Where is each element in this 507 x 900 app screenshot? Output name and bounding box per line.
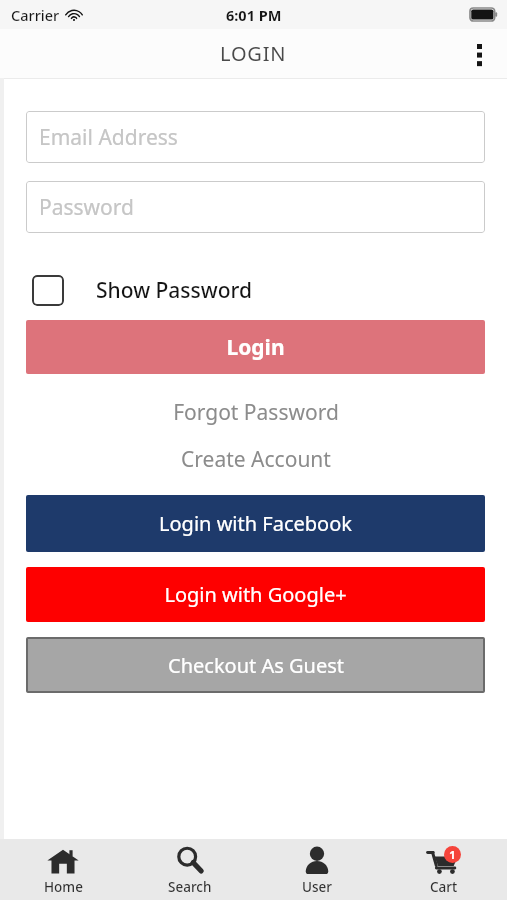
button[interactable]: Forgot Password [4, 397, 507, 427]
button[interactable]: 1 [380, 839, 507, 900]
button[interactable]: Login [26, 320, 485, 374]
button[interactable]: Create Account [4, 444, 507, 474]
staticText: Home [44, 878, 83, 896]
staticText: 6:01 PM [226, 5, 282, 25]
staticText: Login with Google+ [164, 581, 347, 608]
staticText: User [302, 878, 332, 896]
button[interactable]: User [253, 839, 380, 900]
staticText: Email Address [39, 123, 178, 152]
staticText: Carrier [11, 5, 60, 25]
button[interactable]: Login with Google+ [26, 567, 485, 622]
button[interactable]: Checkout As Guest [26, 637, 485, 693]
staticText: LOGIN [220, 40, 287, 67]
button[interactable]: Login with Facebook [26, 495, 485, 552]
button[interactable]: Password [26, 181, 485, 233]
staticText: Cart [430, 878, 458, 896]
staticText: Search [168, 878, 212, 896]
staticText: Login with Facebook [159, 510, 352, 537]
button[interactable]: More options [455, 30, 503, 78]
staticText: Password [39, 193, 134, 222]
staticText: Show Password [96, 276, 253, 305]
button[interactable]: Show Password [32, 273, 253, 307]
staticText: Create Account [181, 445, 331, 474]
staticText: Login [226, 333, 285, 362]
button[interactable]: Email Address [26, 111, 485, 163]
staticText: 1 [449, 847, 456, 862]
button[interactable]: Search [126, 839, 253, 900]
button[interactable]: Home [0, 839, 126, 900]
staticText: Checkout As Guest [168, 652, 344, 679]
staticText: Forgot Password [173, 398, 339, 427]
